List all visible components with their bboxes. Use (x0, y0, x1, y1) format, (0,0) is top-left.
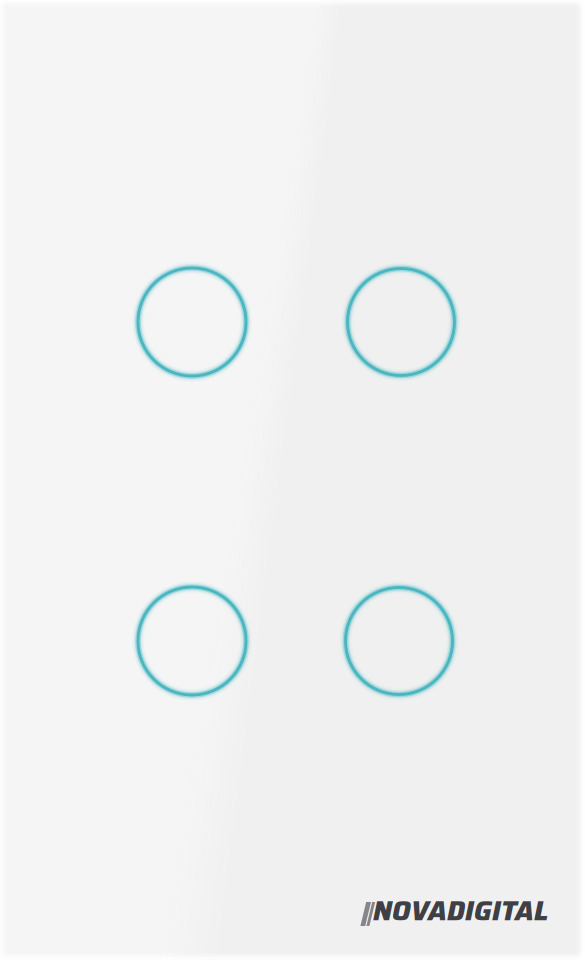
button[interactable]: Switch 4 (332, 574, 465, 707)
button[interactable]: Switch 1 (125, 255, 259, 389)
button[interactable]: Switch 3 (125, 574, 259, 708)
button[interactable]: Switch 2 (334, 255, 467, 388)
staticText: NOVADIGITAL (373, 890, 548, 932)
